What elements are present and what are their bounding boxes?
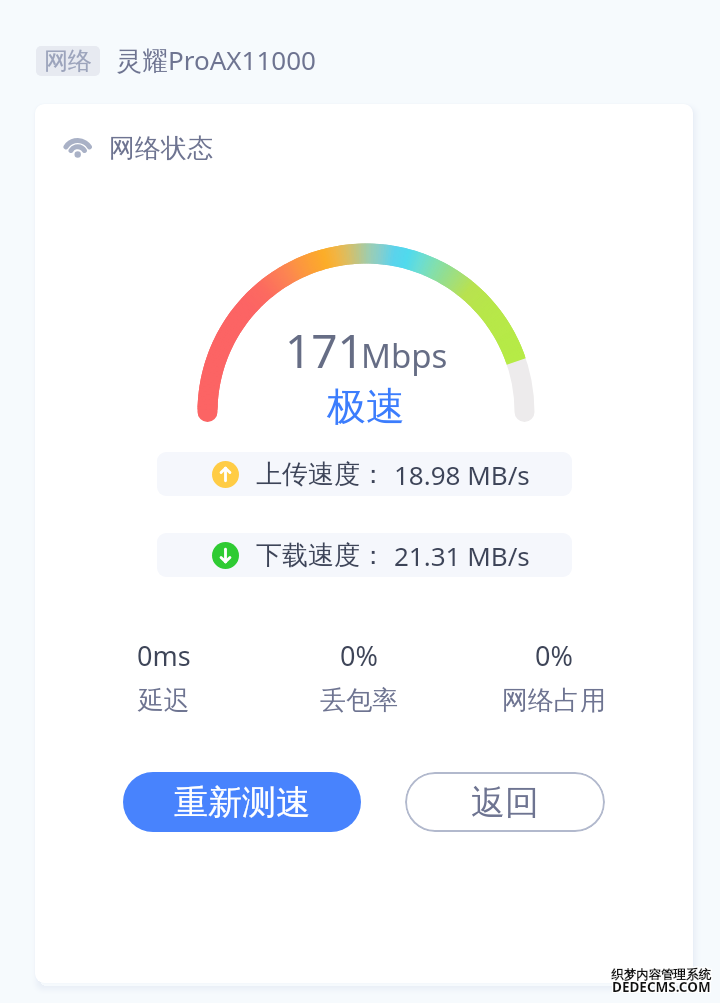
staticText: DEDECMS.COM — [611, 978, 710, 996]
staticText: 织梦内容管理系统 — [611, 966, 711, 982]
staticText: DEDECMS.COM — [612, 979, 711, 997]
staticText: 织梦内容管理系统 — [611, 967, 711, 983]
staticText: 织梦内容管理系统 — [610, 967, 710, 983]
staticText: DEDECMS.COM — [611, 977, 710, 995]
staticText: 0% — [340, 637, 378, 674]
staticText: DEDECMS.COM — [612, 978, 711, 996]
staticText: 织梦内容管理系统 — [610, 968, 710, 984]
button[interactable]: 网络 — [36, 46, 100, 76]
button[interactable]: 上传速度： — [157, 452, 572, 496]
staticText: 18.98 MB/s — [394, 457, 530, 492]
staticText: 网络 — [44, 46, 92, 76]
staticText: DEDECMS.COM — [612, 977, 711, 995]
staticText: 0% — [535, 637, 573, 674]
staticText: 丢包率 — [320, 684, 398, 717]
staticText: DEDECMS.COM — [613, 978, 712, 996]
staticText: 21.31 MB/s — [394, 538, 530, 573]
staticText: 网络状态 — [109, 132, 213, 165]
staticText: 织梦内容管理系统 — [612, 968, 712, 984]
other: Wi-Fi — [63, 136, 95, 162]
staticText: 重新测速 — [174, 781, 310, 824]
staticText: 上传速度： — [256, 458, 386, 491]
staticText: 0ms — [137, 637, 191, 674]
staticText: 下载速度： — [256, 539, 386, 572]
staticText: DEDECMS.COM — [611, 979, 710, 997]
staticText: 织梦内容管理系统 — [612, 966, 712, 982]
staticText: 织梦内容管理系统 — [610, 966, 710, 982]
staticText: 171 — [285, 319, 364, 382]
button[interactable]: 返回 — [405, 772, 605, 832]
staticText: 灵耀ProAX11000 — [116, 42, 316, 78]
staticText: Mbps — [361, 333, 448, 378]
staticText: 织梦内容管理系统 — [612, 967, 712, 983]
button[interactable]: 重新测速 — [123, 772, 361, 832]
staticText: 织梦内容管理系统 — [611, 968, 711, 984]
staticText: DEDECMS.COM — [613, 977, 712, 995]
button[interactable]: 下载速度： — [157, 533, 572, 577]
staticText: DEDECMS.COM — [613, 979, 712, 997]
staticText: 延迟 — [138, 684, 190, 717]
staticText: 极速 — [327, 382, 405, 431]
staticText: 返回 — [471, 781, 539, 824]
staticText: 网络占用 — [502, 684, 606, 717]
